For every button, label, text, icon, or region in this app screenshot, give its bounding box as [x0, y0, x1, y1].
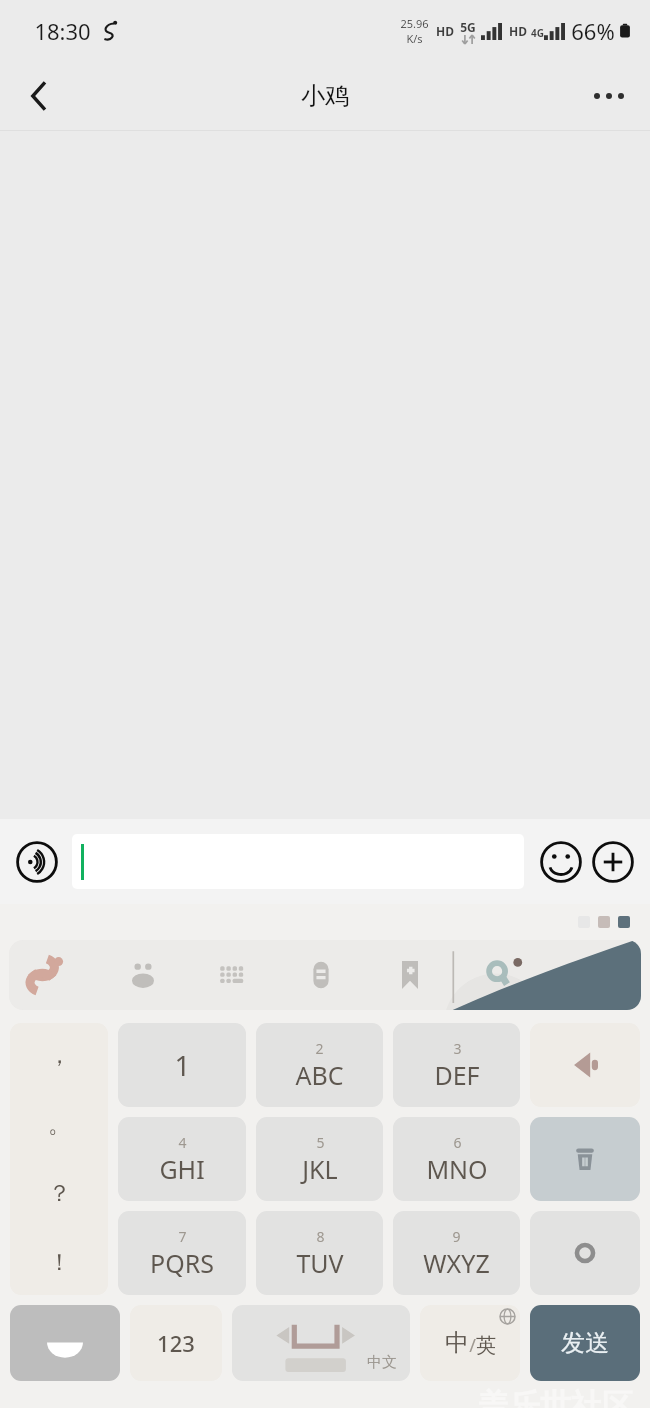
button[interactable]: Delete	[530, 1117, 640, 1201]
staticText: 小鸡	[301, 81, 349, 111]
button[interactable]: Saved phrases	[365, 940, 454, 1010]
staticText: 。	[48, 1110, 71, 1139]
staticText: 5G	[460, 19, 476, 35]
button[interactable]: Stickers	[99, 940, 187, 1010]
button[interactable]: 5	[256, 1117, 383, 1201]
staticText: 4G	[531, 26, 544, 40]
staticText: 5	[316, 1133, 325, 1152]
button[interactable]: 2	[256, 1023, 383, 1107]
staticText: 发送	[561, 1328, 609, 1358]
button[interactable]: Sogou input	[9, 940, 99, 1010]
button[interactable]: Emoji	[537, 838, 585, 886]
staticText: ABC	[295, 1058, 344, 1092]
button[interactable]: Back	[10, 67, 68, 125]
staticText: WXYZ	[423, 1246, 490, 1280]
staticText: ！	[48, 1248, 71, 1277]
button[interactable]	[72, 834, 524, 889]
button[interactable]: Clipboard	[276, 940, 365, 1010]
staticText: ，	[48, 1041, 71, 1070]
button[interactable]: Space	[232, 1305, 410, 1381]
button[interactable]: ，	[10, 1023, 108, 1295]
staticText: 7	[178, 1227, 187, 1246]
staticText: ？	[48, 1179, 71, 1208]
button[interactable]: Voice	[530, 1023, 640, 1107]
staticText: 3	[453, 1039, 462, 1058]
staticText: PQRS	[150, 1246, 214, 1280]
button[interactable]: 8	[256, 1211, 383, 1295]
staticText: 66%	[571, 16, 615, 46]
staticText: 18:30	[34, 16, 91, 46]
button[interactable]: Voice input	[13, 838, 61, 886]
staticText: GHI	[159, 1152, 205, 1186]
button[interactable]: Keyboard layout	[187, 940, 276, 1010]
staticText: DEF	[434, 1058, 480, 1092]
button[interactable]: 1	[118, 1023, 246, 1107]
staticText: 6	[453, 1133, 462, 1152]
staticText: 英	[476, 1333, 496, 1358]
staticText: TUV	[296, 1246, 344, 1280]
button[interactable]: 123	[130, 1305, 222, 1381]
button[interactable]: 7	[118, 1211, 246, 1295]
button[interactable]: Shift	[10, 1305, 120, 1381]
staticText: 8	[316, 1227, 325, 1246]
button[interactable]: 6	[393, 1117, 520, 1201]
staticText: 25.96	[400, 16, 429, 31]
staticText: /	[469, 1333, 476, 1358]
button[interactable]: Search	[454, 940, 543, 1010]
button[interactable]: More options	[580, 67, 638, 125]
staticText: 中文	[367, 1353, 397, 1372]
staticText: 1	[174, 1046, 191, 1084]
staticText: 盖乐世社区	[478, 1386, 633, 1408]
button[interactable]: 中	[420, 1305, 520, 1381]
staticText: JKL	[302, 1152, 338, 1186]
staticText: 中	[445, 1328, 469, 1358]
staticText: HD	[509, 23, 527, 39]
staticText: 4	[178, 1133, 187, 1152]
button[interactable]: 9	[393, 1211, 520, 1295]
button[interactable]: 发送	[530, 1305, 640, 1381]
staticText: HD	[436, 23, 454, 39]
staticText: 2	[315, 1039, 324, 1058]
button[interactable]: Enter	[530, 1211, 640, 1295]
button[interactable]: 3	[393, 1023, 520, 1107]
staticText: K/s	[406, 31, 423, 46]
staticText: MNO	[426, 1152, 488, 1186]
staticText: 9	[452, 1227, 461, 1246]
button[interactable]: More functions	[589, 838, 637, 886]
staticText: 123	[157, 1328, 195, 1358]
button[interactable]: 4	[118, 1117, 246, 1201]
